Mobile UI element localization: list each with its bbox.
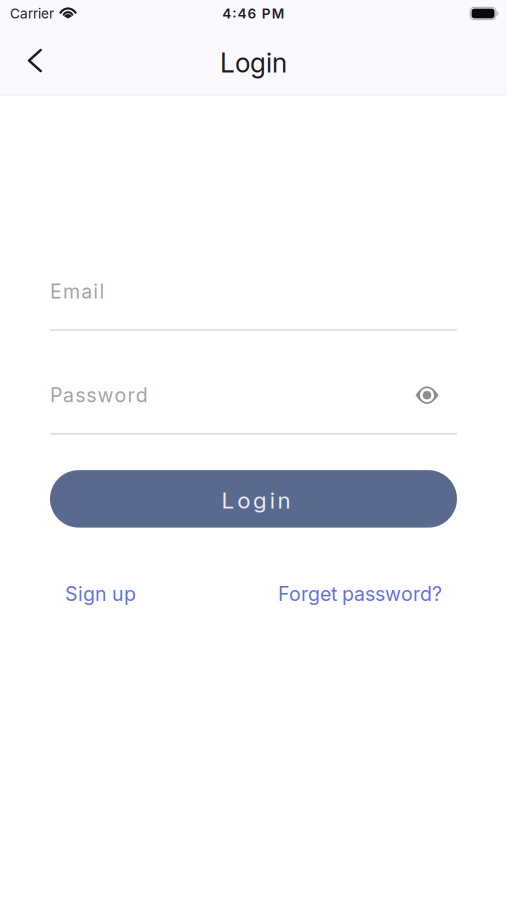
staticText: Login bbox=[221, 487, 291, 514]
button[interactable]: Login bbox=[50, 470, 457, 528]
staticText: Password bbox=[50, 383, 148, 407]
button[interactable]: Show password bbox=[415, 386, 457, 404]
button[interactable]: Back bbox=[0, 34, 59, 87]
staticText: Sign up bbox=[65, 582, 136, 606]
staticText: Login bbox=[220, 47, 287, 79]
staticText: Carrier bbox=[10, 5, 54, 22]
button[interactable]: Forget password? bbox=[278, 582, 442, 606]
staticText: 4:46 PM bbox=[222, 5, 285, 22]
button[interactable]: Sign up bbox=[65, 582, 136, 606]
staticText: Forget password? bbox=[278, 582, 442, 606]
staticText: Email bbox=[50, 279, 104, 303]
